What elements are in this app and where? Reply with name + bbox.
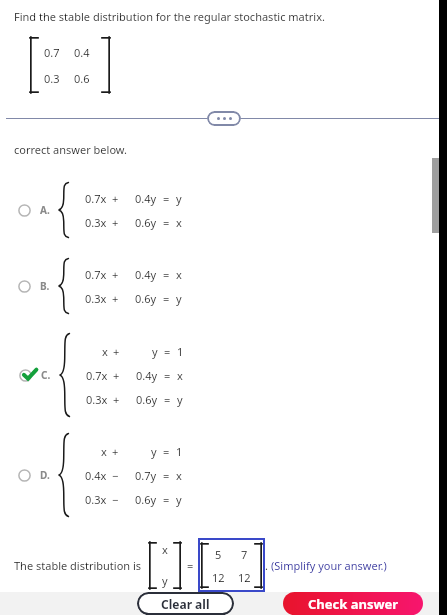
staticText: + — [112, 191, 119, 206]
staticText: = — [163, 468, 170, 483]
staticText: B. — [40, 279, 50, 293]
staticText: + — [112, 215, 119, 230]
staticText: 1 — [176, 444, 183, 459]
staticText: 12 — [238, 570, 251, 585]
staticText: = — [163, 291, 170, 306]
staticText: x — [176, 468, 182, 483]
staticText: − — [112, 492, 119, 507]
staticText: The stable distribution is — [14, 558, 142, 573]
staticText: correct answer below. — [14, 142, 128, 157]
staticText: = — [164, 368, 171, 383]
staticText: y — [151, 444, 157, 459]
staticText: + — [113, 344, 120, 359]
button[interactable]: C. — [0, 333, 447, 417]
staticText: = — [163, 444, 170, 459]
staticText: y — [176, 291, 182, 306]
staticText: Clear all — [161, 596, 210, 612]
staticText: 5 — [215, 547, 222, 562]
staticText: 7 — [241, 547, 248, 562]
staticText: + — [113, 392, 120, 407]
staticText: − — [112, 468, 119, 483]
staticText: 0.3x — [86, 392, 108, 407]
staticText: + — [112, 444, 119, 459]
staticText: 0.6y — [136, 392, 158, 407]
staticText: D. — [40, 468, 50, 482]
staticText: 0.3x — [85, 492, 107, 507]
staticText: = — [164, 392, 171, 407]
staticText: + — [113, 368, 120, 383]
staticText: 0.4y — [136, 368, 158, 383]
staticText: 0.6y — [135, 492, 157, 507]
staticText: 0.6y — [135, 291, 157, 306]
staticText: 0.4y — [135, 191, 157, 206]
staticText: y — [152, 344, 158, 359]
staticText: = — [163, 492, 170, 507]
staticText: = — [163, 267, 170, 282]
staticText: . — [265, 558, 268, 573]
staticText: y — [177, 392, 183, 407]
staticText: y — [176, 191, 182, 206]
staticText: x — [177, 368, 183, 383]
button[interactable]: More options — [207, 111, 241, 126]
staticText: 0.7y — [135, 468, 157, 483]
staticText: 12 — [212, 570, 225, 585]
staticText: y — [176, 492, 182, 507]
staticText: (Simplify your answer.) — [271, 558, 387, 573]
staticText: Find the stable distribution for the reg… — [14, 9, 325, 24]
staticText: = — [164, 344, 171, 359]
button[interactable]: 5 — [198, 538, 265, 592]
button[interactable]: Clear all — [137, 592, 234, 615]
staticText: A. — [40, 203, 50, 217]
staticText: y — [162, 573, 168, 588]
staticText: C. — [41, 368, 51, 382]
staticText: = — [187, 558, 194, 573]
staticText: + — [112, 267, 119, 282]
staticText: 0.4x — [85, 468, 107, 483]
button[interactable]: D. — [0, 433, 447, 517]
staticText: Check answer — [308, 595, 399, 613]
staticText: = — [163, 191, 170, 206]
button[interactable]: Check answer — [283, 592, 423, 615]
button[interactable]: A. — [0, 182, 447, 238]
staticText: 0.3 — [44, 71, 60, 86]
staticText: x — [176, 267, 182, 282]
staticText: 0.6y — [135, 215, 157, 230]
staticText: x — [176, 215, 182, 230]
staticText: = — [163, 215, 170, 230]
staticText: 0.6 — [74, 71, 90, 86]
button[interactable]: B. — [0, 258, 447, 314]
staticText: 0.3x — [85, 291, 107, 306]
staticText: 0.4y — [135, 267, 157, 282]
staticText: x — [162, 542, 168, 557]
staticText: 1 — [177, 344, 184, 359]
staticText: x — [101, 444, 107, 459]
staticText: + — [112, 291, 119, 306]
staticText: 0.7x — [86, 368, 108, 383]
staticText: 0.7x — [85, 267, 107, 282]
staticText: 0.3x — [85, 215, 107, 230]
staticText: 0.4 — [74, 45, 90, 60]
staticText: 0.7 — [44, 45, 60, 60]
staticText: x — [102, 344, 108, 359]
staticText: 0.7x — [85, 191, 107, 206]
